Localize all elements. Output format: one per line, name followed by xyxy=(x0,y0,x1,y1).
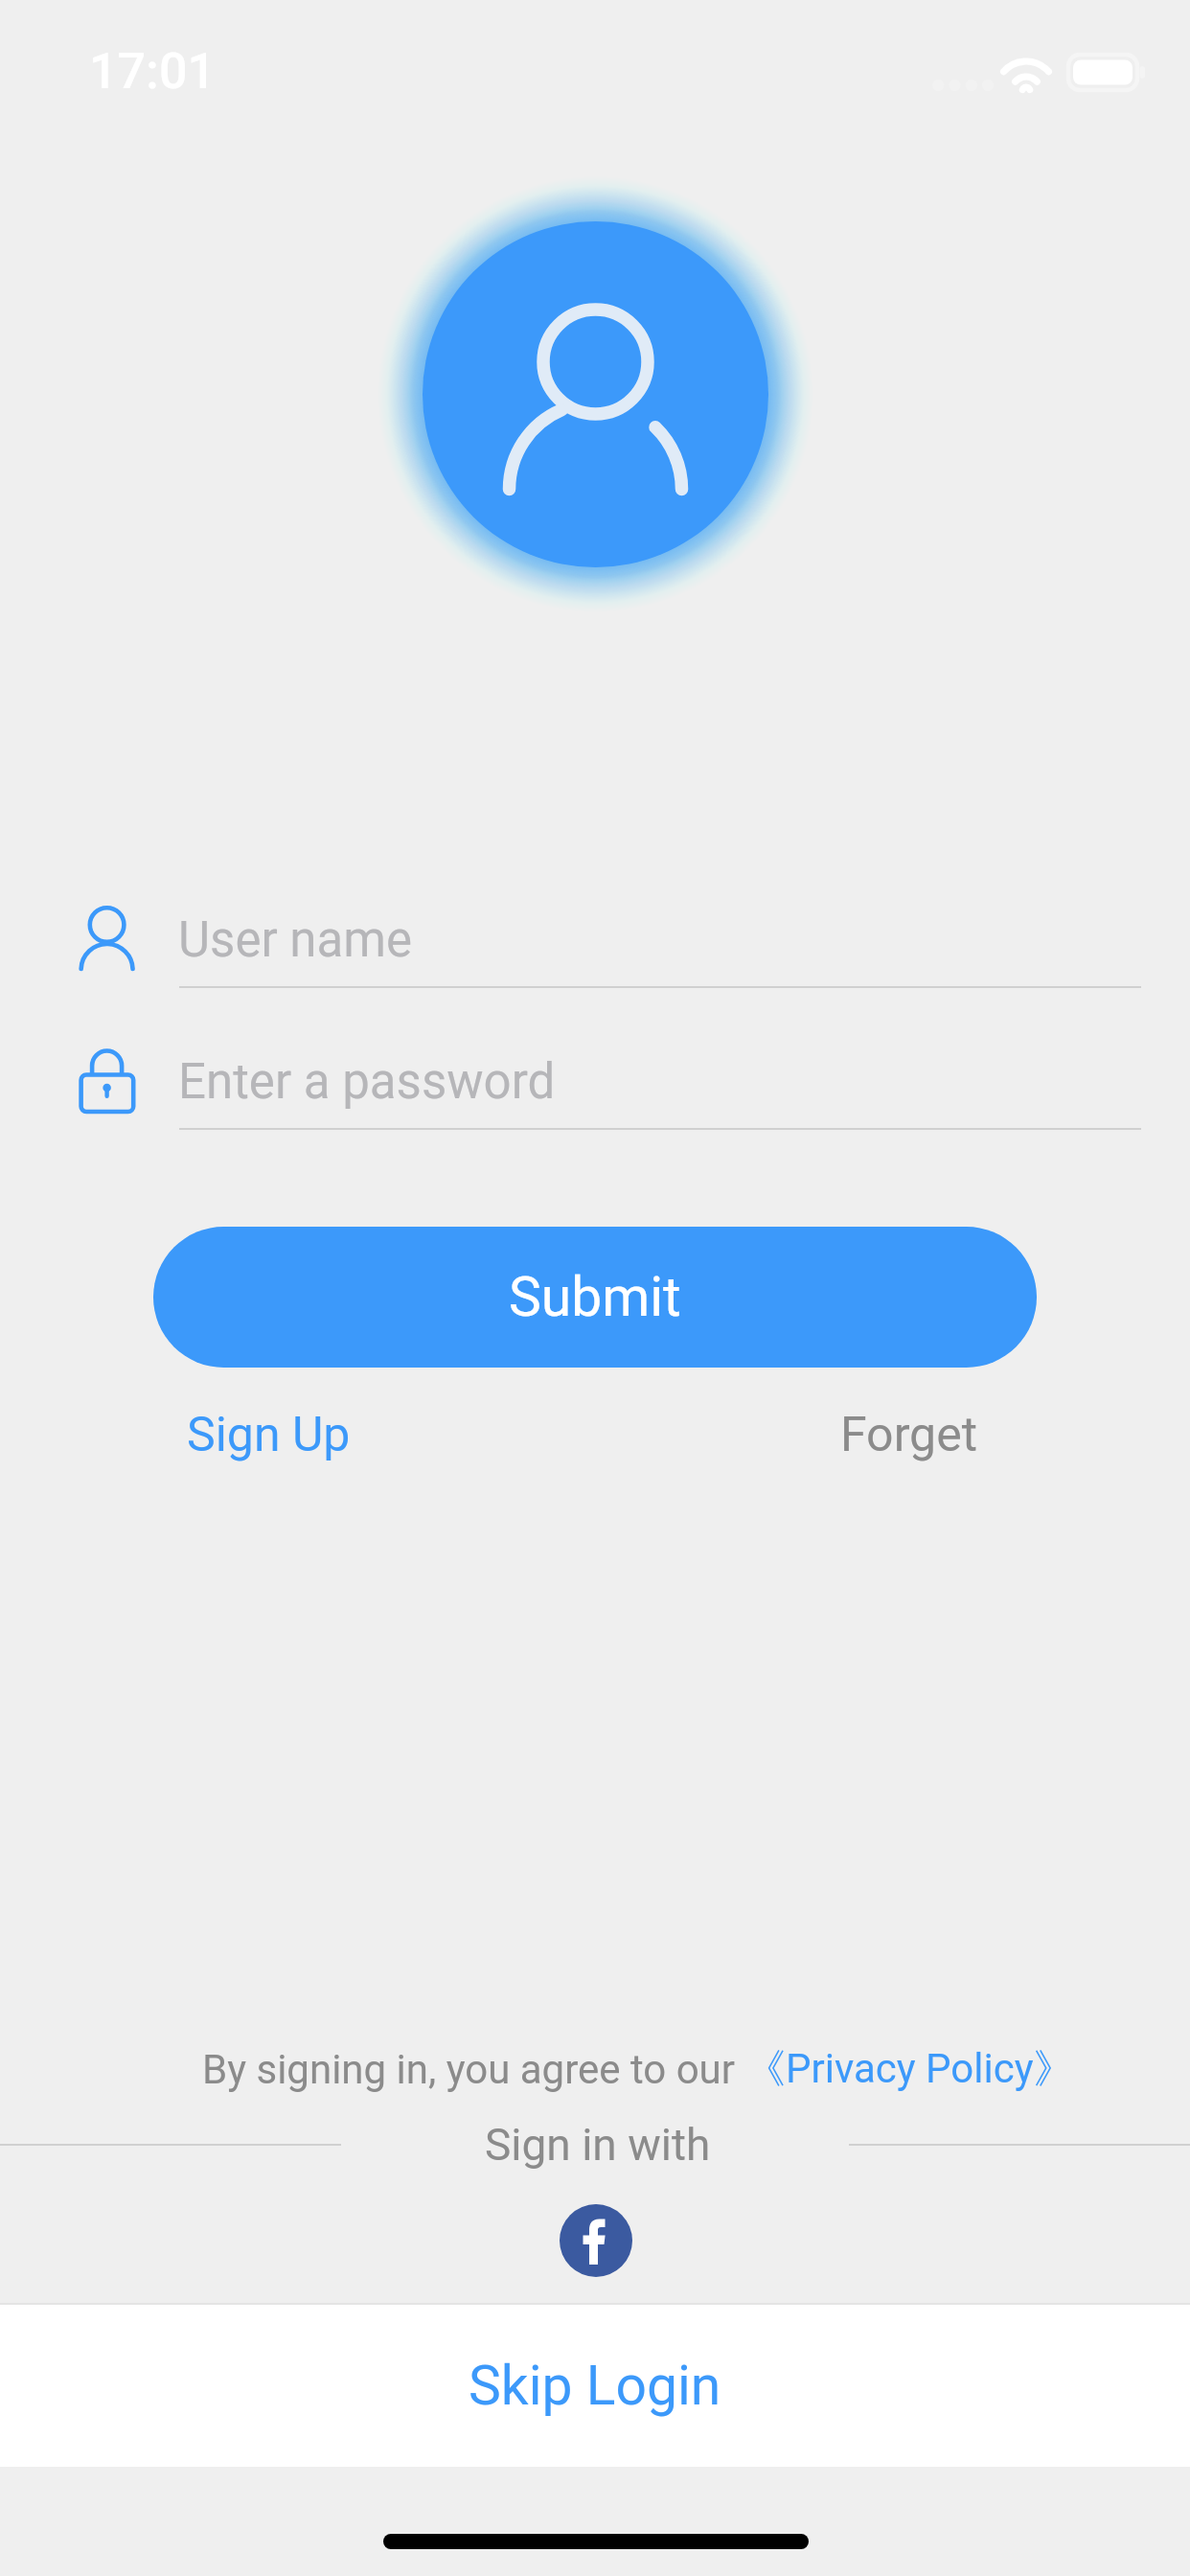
button[interactable]: Submit xyxy=(153,1227,1037,1368)
staticText: 《Privacy Policy》 xyxy=(745,2044,1074,2095)
button[interactable]: Enter a password xyxy=(0,1022,1190,1140)
button[interactable]: Sign Up xyxy=(181,1407,356,1463)
button[interactable]: User name xyxy=(0,880,1190,999)
staticText: User name xyxy=(178,911,413,969)
staticText: Submit xyxy=(509,1265,681,1329)
button[interactable]: 《Privacy Policy》 xyxy=(745,2044,1074,2095)
staticText: Enter a password xyxy=(178,1053,556,1111)
button[interactable]: Sign in with Facebook xyxy=(560,2204,632,2277)
staticText: Sign in with xyxy=(485,2119,711,2171)
button[interactable]: Forget xyxy=(835,1407,984,1463)
button[interactable]: Skip Login xyxy=(0,2305,1190,2467)
staticText: Skip Login xyxy=(469,2354,721,2418)
staticText: 17:01 xyxy=(89,42,217,101)
staticText: By signing in, you agree to our xyxy=(202,2046,745,2093)
staticText: Sign Up xyxy=(187,1407,351,1463)
staticText: Forget xyxy=(840,1407,978,1463)
